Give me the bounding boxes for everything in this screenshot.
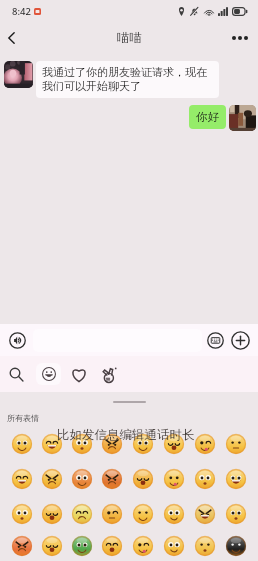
button[interactable]: Emoji ${idx + 1}: [189, 461, 220, 496]
button[interactable]: Emoji ${idx + 1}: [37, 496, 67, 531]
button[interactable]: Emoji ${idx + 1}: [97, 426, 127, 461]
staticText: 所有表情: [7, 413, 39, 423]
button[interactable]: Emoji ${idx + 1}: [189, 426, 220, 461]
staticText: 8:42: [12, 5, 31, 18]
button[interactable]: Emoji ${idx + 1}: [67, 496, 97, 531]
button[interactable]: Emoji ${idx + 1}: [97, 461, 127, 496]
button[interactable]: Emoji ${idx + 1}: [67, 426, 97, 461]
staticText: 喵喵: [117, 30, 142, 46]
button[interactable]: Emoji ${idx + 1}: [127, 531, 158, 561]
button[interactable]: Search stickers: [3, 361, 30, 387]
button[interactable]: Emoji ${idx + 1}: [189, 496, 220, 531]
button[interactable]: Favorite stickers: [65, 361, 92, 387]
button[interactable]: Emoji: [36, 363, 61, 385]
button[interactable]: Emoji ${idx + 1}: [158, 426, 189, 461]
button[interactable]: Emoji ${idx + 1}: [127, 426, 158, 461]
button[interactable]: Emoji ${idx + 1}: [7, 426, 37, 461]
button[interactable]: Emoji ${idx + 1}: [158, 531, 189, 561]
button[interactable]: Voice message: [9, 332, 26, 349]
button[interactable]: Back: [0, 22, 23, 54]
staticText: 我通过了你的朋友验证请求，现在我们可以开始聊天了: [42, 65, 214, 93]
button[interactable]: Emoji ${idx + 1}: [220, 461, 251, 496]
button[interactable]: More options: [221, 22, 258, 54]
button[interactable]: Keyboard: [207, 332, 224, 349]
button[interactable]: Emoji ${idx + 1}: [7, 531, 37, 561]
button[interactable]: Emoji ${idx + 1}: [189, 531, 220, 561]
button[interactable]: Emoji ${idx + 1}: [127, 461, 158, 496]
button[interactable]: More functions: [231, 331, 250, 350]
button[interactable]: Emoji ${idx + 1}: [97, 531, 127, 561]
button[interactable]: Emoji ${idx + 1}: [37, 461, 67, 496]
button[interactable]: Emoji ${idx + 1}: [127, 496, 158, 531]
button[interactable]: Emoji ${idx + 1}: [67, 461, 97, 496]
button[interactable]: Emoji ${idx + 1}: [7, 496, 37, 531]
button[interactable]: Emoji ${idx + 1}: [37, 426, 67, 461]
button[interactable]: Emoji ${idx + 1}: [67, 531, 97, 561]
button[interactable]: Emoji ${idx + 1}: [158, 496, 189, 531]
button[interactable]: Emoji ${idx + 1}: [7, 461, 37, 496]
button[interactable]: Emoji ${idx + 1}: [220, 426, 251, 461]
staticText: 比如发信息编辑通话时长: [57, 427, 195, 443]
button[interactable]: Sticker gallery: [95, 361, 122, 387]
button[interactable]: Emoji ${idx + 1}: [220, 496, 251, 531]
staticText: 你好: [196, 110, 219, 124]
button[interactable]: Emoji ${idx + 1}: [220, 531, 251, 561]
button[interactable]: Emoji ${idx + 1}: [97, 496, 127, 531]
button[interactable]: Emoji ${idx + 1}: [37, 531, 67, 561]
button[interactable]: Emoji ${idx + 1}: [158, 461, 189, 496]
